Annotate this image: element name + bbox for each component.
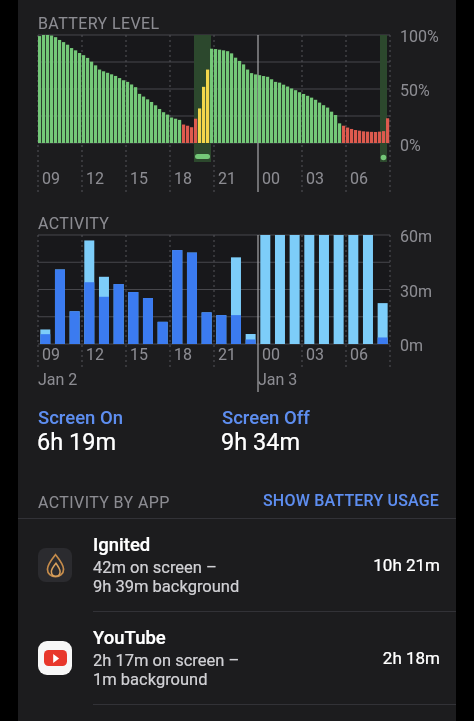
staticText: 18 (174, 169, 192, 188)
button[interactable]: Ignited app icon (18, 518, 456, 611)
staticText: 03 (306, 169, 324, 188)
other: Ignited app icon (38, 548, 72, 582)
staticText: Screen Off (222, 407, 310, 429)
staticText: 12 (86, 169, 104, 188)
staticText: 60m (400, 227, 433, 246)
staticText: 6h 19m (37, 428, 117, 456)
staticText: 09 (42, 169, 60, 188)
staticText: 30m (400, 282, 433, 301)
staticText: 03 (306, 345, 324, 364)
staticText: 1m background (93, 670, 208, 689)
staticText: ACTIVITY (38, 214, 110, 233)
staticText: 15 (130, 169, 148, 188)
staticText: 0% (400, 136, 421, 155)
staticText: 0m (400, 336, 424, 355)
staticText: 00 (262, 345, 280, 364)
staticText: 2h 17m on screen – (93, 651, 240, 670)
staticText: 50% (400, 81, 430, 100)
staticText: Jan 3 (258, 370, 298, 389)
staticText: 9h 34m (221, 428, 301, 456)
staticText: 21 (218, 169, 236, 188)
staticText: BATTERY LEVEL (38, 14, 160, 33)
button[interactable]: SHOW BATTERY USAGE (263, 491, 440, 510)
staticText: 12 (86, 345, 104, 364)
staticText: 18 (174, 345, 192, 364)
staticText: 2h 18m (382, 648, 440, 668)
staticText: 10h 21m (373, 555, 440, 575)
staticText: 06 (350, 169, 368, 188)
staticText: 42m on screen – (93, 558, 217, 577)
staticText: ACTIVITY BY APP (38, 493, 170, 512)
staticText: 9h 39m background (93, 577, 240, 596)
other: YouTube app icon (38, 641, 72, 675)
staticText: 00 (262, 169, 280, 188)
staticText: Jan 2 (38, 370, 78, 389)
staticText: Ignited (93, 534, 151, 556)
staticText: 15 (130, 345, 148, 364)
staticText: 06 (350, 345, 368, 364)
button[interactable]: YouTube app icon (18, 611, 456, 704)
staticText: Screen On (38, 407, 124, 429)
staticText: 100% (400, 27, 439, 46)
staticText: 09 (42, 345, 60, 364)
staticText: 21 (218, 345, 236, 364)
staticText: YouTube (93, 627, 166, 649)
